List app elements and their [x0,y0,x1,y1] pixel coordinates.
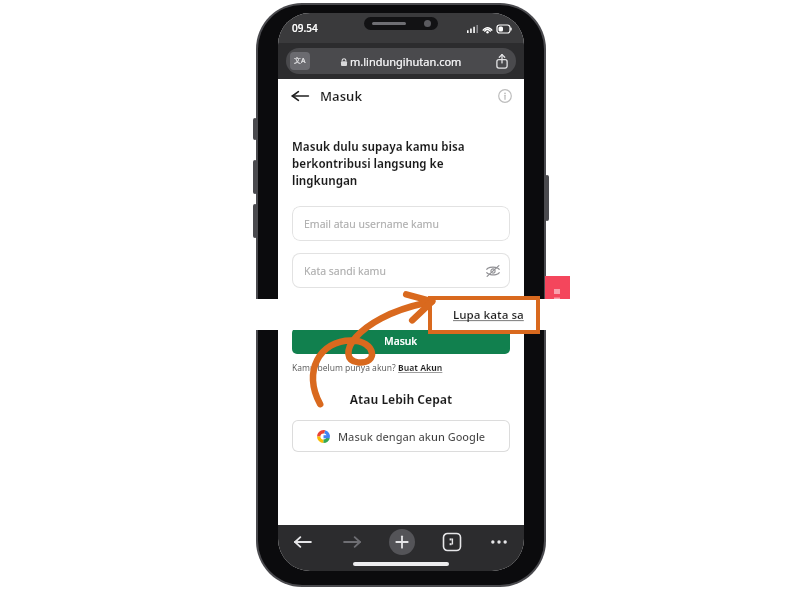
staticText: Kamu belum punya akun? [292,362,398,374]
staticText: Lupa kata sa [453,307,524,323]
button[interactable]: Lupa kata sandi? [416,298,510,317]
button[interactable]: Tabs [442,532,462,552]
button[interactable]: Share [494,53,510,69]
button[interactable]: More [488,531,510,553]
button[interactable]: New tab [389,529,415,555]
button[interactable]: Translate [290,52,310,70]
button[interactable]: Feedback [545,276,570,330]
button[interactable]: Back [292,531,314,553]
button[interactable]: Masuk [292,328,510,354]
staticText: Lupa kata sandi? [418,300,508,315]
staticText: Kata sandi kamu [304,264,386,278]
staticText: Atau Lebih Cepat [292,391,510,407]
button[interactable]: Kata sandi kamu [292,253,510,288]
staticText: Masuk [384,334,418,348]
staticText: m.lindungihutan.com [350,54,462,69]
button[interactable]: Buat Akun [398,362,443,374]
staticText: 09.54 [292,21,318,35]
button[interactable]: Show password [486,264,500,278]
button[interactable]: Back [290,86,310,106]
staticText: Masuk dulu supaya kamu bisa berkontribus… [292,139,510,189]
button[interactable]: Forward [341,531,363,553]
staticText: 文A [294,56,306,66]
staticText: Email atau username kamu [304,217,439,231]
button[interactable]: Masuk dengan akun Google [292,420,510,452]
staticText: Masuk [320,87,363,105]
button[interactable]: Info [498,89,512,103]
staticText: Buat Akun [398,362,443,374]
staticText: Masuk dengan akun Google [338,429,486,444]
button[interactable]: Email atau username kamu [292,206,510,241]
